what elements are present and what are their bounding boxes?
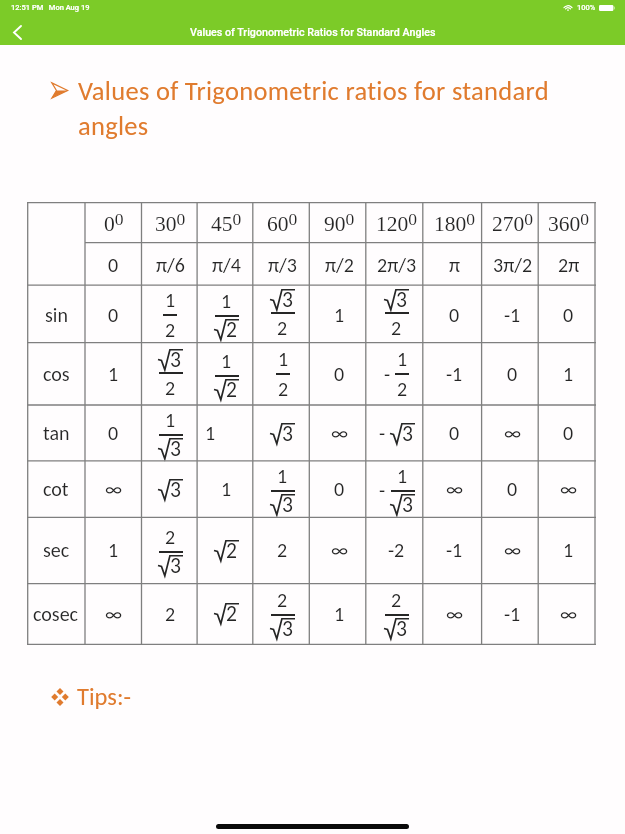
staticText: ∞ xyxy=(331,421,349,445)
staticText: 2700 xyxy=(492,209,533,236)
staticText: 2 xyxy=(226,600,237,621)
staticText: 00 xyxy=(104,209,124,236)
staticText: 2 xyxy=(165,602,176,626)
staticText: 1800 xyxy=(434,209,475,236)
staticText: 2 xyxy=(278,377,289,401)
staticText: 3 xyxy=(396,615,407,636)
staticText: 1 xyxy=(334,303,345,327)
staticText: π/4 xyxy=(212,253,241,277)
staticText: 100% xyxy=(577,3,596,12)
staticText: 3600 xyxy=(548,209,589,236)
staticText: 0 xyxy=(563,421,574,445)
staticText: 300 xyxy=(155,209,186,236)
staticText: cosec xyxy=(33,602,79,626)
staticText: ∞ xyxy=(105,477,123,501)
staticText: tan xyxy=(43,421,70,445)
staticText: 12:51 PM Mon Aug 19 xyxy=(11,3,90,12)
staticText: 3 xyxy=(282,420,293,441)
staticText: 3 xyxy=(282,286,293,307)
staticText: ∞ xyxy=(560,602,578,626)
staticText: 0 xyxy=(449,421,460,445)
staticText: 1 xyxy=(278,347,289,371)
staticText: - xyxy=(384,362,391,386)
staticText: π/2 xyxy=(325,253,354,277)
staticText: 1 xyxy=(165,288,176,312)
staticText: ∞ xyxy=(504,421,522,445)
staticText: 0 xyxy=(108,421,119,445)
staticText: 0 xyxy=(108,253,119,277)
staticText: 3 xyxy=(282,615,293,636)
staticText: 1 xyxy=(221,349,232,373)
staticText: 2 xyxy=(277,588,288,612)
staticText: 2 xyxy=(397,377,408,401)
staticText: 0 xyxy=(449,303,460,327)
staticText: ∞ xyxy=(446,602,464,626)
staticText: 0 xyxy=(108,303,119,327)
staticText: - xyxy=(379,421,386,445)
staticText: 0 xyxy=(507,477,518,501)
staticText: 2π xyxy=(558,253,580,277)
button[interactable]: Back xyxy=(0,19,34,45)
staticText: π/3 xyxy=(268,253,297,277)
staticText: -1 xyxy=(446,538,463,562)
staticText: ∞ xyxy=(105,602,123,626)
staticText: 3 xyxy=(170,435,181,456)
staticText: 2 xyxy=(391,316,402,340)
staticText: 3 xyxy=(402,491,413,512)
staticText: 0 xyxy=(563,303,574,327)
staticText: 600 xyxy=(267,209,298,236)
staticText: Values of Trigonometric ratios for stand… xyxy=(78,75,549,142)
staticText: 1 xyxy=(221,289,232,313)
staticText: 2 xyxy=(165,376,176,400)
staticText: cot xyxy=(43,477,69,501)
staticText: sin xyxy=(45,303,68,327)
staticText: ∞ xyxy=(331,538,349,562)
staticText: Values of Trigonometric Ratios for Stand… xyxy=(190,26,436,39)
staticText: ∞ xyxy=(446,477,464,501)
staticText: 2 xyxy=(226,537,237,558)
staticText: 1 xyxy=(221,477,232,501)
staticText: ∞ xyxy=(504,538,522,562)
staticText: 0 xyxy=(334,477,345,501)
staticText: cos xyxy=(43,362,70,386)
staticText: 2 xyxy=(277,538,288,562)
staticText: 1 xyxy=(334,602,345,626)
staticText: 3 xyxy=(170,476,181,497)
staticText: sec xyxy=(43,538,70,562)
staticText: -1 xyxy=(504,602,521,626)
staticText: 1 xyxy=(205,421,216,445)
staticText: 1 xyxy=(108,362,119,386)
staticText: 2 xyxy=(391,588,402,612)
staticText: -1 xyxy=(504,303,521,327)
staticText: 2 xyxy=(226,376,237,397)
staticText: 1 xyxy=(165,408,176,432)
staticText: 3π/2 xyxy=(493,253,533,277)
staticText: 1200 xyxy=(376,209,417,236)
staticText: 0 xyxy=(334,362,345,386)
staticText: 3 xyxy=(282,491,293,512)
staticText: 3 xyxy=(402,420,413,441)
staticText: 2π/3 xyxy=(377,253,417,277)
staticText: 3 xyxy=(170,552,181,573)
staticText: 0 xyxy=(507,362,518,386)
staticText: 1 xyxy=(563,538,574,562)
staticText: π xyxy=(449,253,461,277)
staticText: 1 xyxy=(108,538,119,562)
staticText: 900 xyxy=(324,209,355,236)
staticText: 1 xyxy=(397,464,408,488)
staticText: π/6 xyxy=(156,253,185,277)
staticText: 450 xyxy=(211,209,242,236)
staticText: 2 xyxy=(165,525,176,549)
staticText: - xyxy=(379,478,386,502)
staticText: 2 xyxy=(277,316,288,340)
staticText: 2 xyxy=(165,318,176,342)
staticText: 1 xyxy=(277,464,288,488)
staticText: 3 xyxy=(396,286,407,307)
staticText: 1 xyxy=(563,362,574,386)
staticText: Tips:- xyxy=(77,682,131,712)
staticText: 1 xyxy=(397,347,408,371)
staticText: ∞ xyxy=(560,477,578,501)
staticText: 2 xyxy=(226,316,237,337)
staticText: -1 xyxy=(446,362,463,386)
staticText: 3 xyxy=(170,346,181,367)
